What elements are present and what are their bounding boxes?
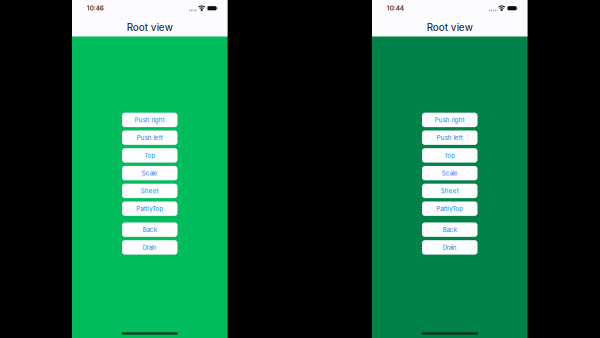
- staticText: Back: [143, 226, 157, 233]
- button[interactable]: Scale: [422, 166, 477, 180]
- staticText: Push left: [437, 134, 463, 141]
- button[interactable]: Back: [122, 222, 177, 237]
- button[interactable]: Drain: [422, 240, 477, 255]
- button[interactable]: PartlyTop: [122, 201, 177, 216]
- button[interactable]: Push right: [122, 113, 177, 127]
- button[interactable]: Back: [422, 222, 477, 237]
- staticText: 10:46: [87, 4, 104, 12]
- button[interactable]: Push right: [422, 113, 477, 127]
- staticText: Back: [443, 226, 457, 233]
- staticText: Drain: [443, 244, 457, 251]
- button[interactable]: Sheet: [122, 184, 177, 198]
- staticText: Top: [144, 152, 155, 159]
- staticText: PartlyTop: [436, 205, 463, 212]
- button[interactable]: Top: [422, 148, 477, 163]
- staticText: Top: [444, 152, 455, 159]
- button[interactable]: Scale: [122, 166, 177, 180]
- staticText: Push right: [135, 116, 165, 124]
- staticText: PartlyTop: [136, 205, 163, 212]
- button[interactable]: Push left: [122, 130, 177, 145]
- staticText: Scale: [142, 169, 158, 177]
- staticText: Root view: [427, 21, 473, 33]
- staticText: Drain: [143, 244, 157, 251]
- staticText: Root view: [127, 21, 173, 33]
- button[interactable]: Sheet: [422, 184, 477, 198]
- staticText: Sheet: [441, 187, 459, 195]
- staticText: Push right: [435, 116, 465, 124]
- staticText: 10:44: [387, 4, 404, 12]
- button[interactable]: Push left: [422, 130, 477, 145]
- button[interactable]: PartlyTop: [422, 201, 477, 216]
- staticText: Push left: [137, 134, 163, 141]
- staticText: Scale: [442, 169, 458, 177]
- button[interactable]: Top: [122, 148, 177, 163]
- button[interactable]: Drain: [122, 240, 177, 255]
- staticText: Sheet: [141, 187, 159, 195]
